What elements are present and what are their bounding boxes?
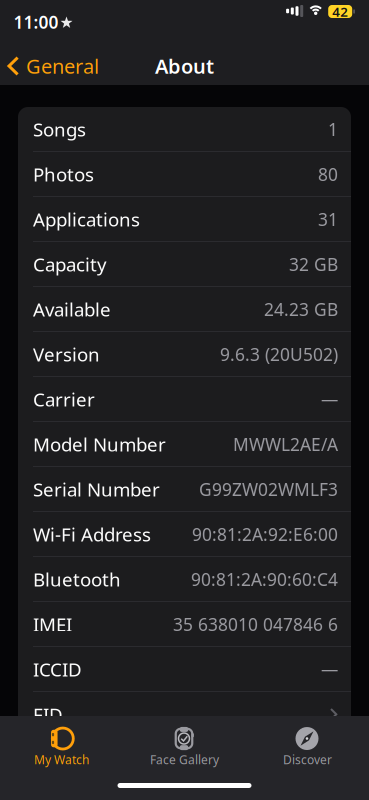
staticText: Version bbox=[33, 342, 100, 367]
staticText: 90:81:2A:90:60:C4 bbox=[191, 568, 338, 591]
staticText: 24.23 GB bbox=[264, 298, 338, 321]
staticText: My Watch bbox=[34, 751, 89, 767]
staticText: 90:81:2A:92:E6:00 bbox=[192, 523, 338, 546]
staticText: Photos bbox=[33, 162, 94, 187]
staticText: Songs bbox=[33, 117, 86, 142]
button[interactable]: My Watch bbox=[6, 724, 116, 772]
staticText: 31 bbox=[318, 208, 338, 231]
staticText: Discover bbox=[283, 751, 332, 767]
staticText: — bbox=[321, 388, 338, 411]
staticText: Wi-Fi Address bbox=[33, 522, 151, 547]
staticText: — bbox=[321, 658, 338, 681]
staticText: Capacity bbox=[33, 252, 107, 277]
staticText: ICCID bbox=[33, 657, 82, 682]
staticText: 42 bbox=[332, 3, 348, 20]
staticText: 1 bbox=[328, 118, 338, 141]
staticText: EID bbox=[33, 702, 63, 727]
button[interactable]: EID bbox=[18, 692, 351, 737]
staticText: 80 bbox=[318, 163, 338, 186]
staticText: 35 638010 047846 6 bbox=[173, 613, 338, 636]
staticText: Face Gallery bbox=[150, 751, 219, 767]
staticText: MWWL2AE/A bbox=[233, 433, 338, 456]
button[interactable]: Discover bbox=[252, 724, 362, 772]
staticText: 11:00 bbox=[13, 10, 58, 33]
staticText: About bbox=[155, 53, 214, 79]
button[interactable]: Back bbox=[0, 53, 99, 79]
staticText: 32 GB bbox=[289, 253, 338, 276]
staticText: 9.6.3 (20U502) bbox=[220, 343, 338, 366]
staticText: Model Number bbox=[33, 432, 166, 457]
staticText: Serial Number bbox=[33, 477, 160, 502]
staticText: Carrier bbox=[33, 387, 95, 412]
staticText: G99ZW02WMLF3 bbox=[199, 478, 338, 501]
staticText: General bbox=[26, 53, 99, 79]
staticText: Available bbox=[33, 297, 111, 322]
button[interactable]: Face Gallery bbox=[129, 724, 239, 772]
staticText: IMEI bbox=[33, 612, 72, 637]
staticText: Bluetooth bbox=[33, 567, 121, 592]
staticText: Applications bbox=[33, 207, 140, 232]
